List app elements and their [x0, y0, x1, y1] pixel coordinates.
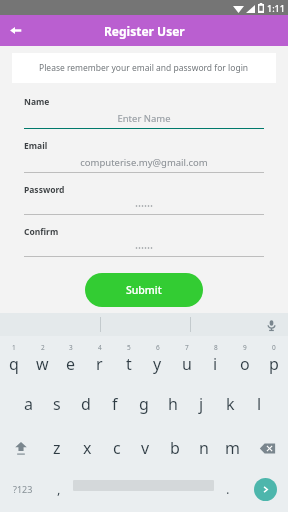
staticText: w: [36, 353, 49, 375]
staticText: g: [139, 393, 149, 415]
button[interactable]: Email: [24, 140, 264, 173]
staticText: Register User: [104, 23, 185, 39]
staticText: z: [53, 437, 61, 459]
staticText: f: [112, 393, 118, 415]
button[interactable]: 7: [172, 336, 201, 382]
button[interactable]: z: [42, 426, 72, 470]
staticText: t: [126, 353, 132, 375]
staticText: Name: [24, 96, 50, 108]
staticText: e: [66, 353, 76, 375]
button[interactable]: h: [158, 382, 187, 426]
staticText: .: [226, 480, 230, 498]
staticText: Email: [24, 140, 48, 152]
button[interactable]: Confirm: [24, 226, 264, 257]
staticText: Enter Name: [117, 112, 171, 125]
button[interactable]: 3: [56, 336, 85, 382]
button[interactable]: j: [187, 382, 216, 426]
staticText: r: [96, 353, 103, 375]
staticText: v: [141, 437, 150, 459]
staticText: 6: [156, 343, 160, 352]
staticText: b: [170, 437, 180, 459]
button[interactable]: n: [189, 426, 218, 470]
staticText: 7: [185, 343, 189, 352]
staticText: 1: [12, 343, 16, 352]
staticText: 9: [243, 343, 247, 352]
staticText: u: [182, 353, 192, 375]
staticText: 5: [127, 343, 131, 352]
staticText: Confirm: [24, 226, 59, 238]
staticText: i: [213, 353, 218, 375]
staticText: a: [24, 393, 33, 415]
staticText: ,: [57, 480, 61, 498]
staticText: 3: [69, 343, 73, 352]
staticText: 0: [272, 343, 276, 352]
staticText: computerise.my@gmail.com: [80, 156, 208, 169]
staticText: m: [225, 437, 240, 459]
button[interactable]: Name: [24, 96, 264, 129]
button[interactable]: m: [218, 426, 247, 470]
button[interactable]: k: [216, 382, 245, 426]
button[interactable]: Space: [73, 470, 214, 508]
button[interactable]: 9: [230, 336, 259, 382]
staticText: d: [81, 393, 91, 415]
button[interactable]: g: [129, 382, 158, 426]
button[interactable]: Voice input: [262, 316, 280, 334]
button[interactable]: .: [214, 470, 242, 508]
staticText: s: [53, 393, 61, 415]
button[interactable]: Backspace: [247, 426, 288, 470]
button[interactable]: 8: [201, 336, 230, 382]
button[interactable]: 4: [85, 336, 114, 382]
staticText: h: [168, 393, 178, 415]
button[interactable]: 0: [259, 336, 288, 382]
staticText: x: [83, 437, 92, 459]
button[interactable]: d: [71, 382, 100, 426]
staticText: j: [199, 393, 204, 415]
staticText: 4: [98, 343, 102, 352]
button[interactable]: Password: [24, 184, 264, 215]
button[interactable]: Shift: [0, 426, 42, 470]
button[interactable]: f: [100, 382, 129, 426]
button[interactable]: x: [72, 426, 102, 470]
button[interactable]: 2: [28, 336, 56, 382]
button[interactable]: l: [245, 382, 274, 426]
button[interactable]: c: [102, 426, 131, 470]
button[interactable]: 1: [0, 336, 28, 382]
button[interactable]: a: [14, 382, 42, 426]
button[interactable]: 5: [114, 336, 143, 382]
button[interactable]: Enter: [254, 478, 277, 501]
staticText: n: [199, 437, 209, 459]
button[interactable]: Submit: [85, 273, 203, 307]
staticText: 2: [41, 343, 45, 352]
staticText: q: [9, 353, 19, 375]
staticText: l: [257, 393, 262, 415]
staticText: Password: [24, 184, 65, 196]
staticText: y: [153, 353, 162, 375]
staticText: 8: [214, 343, 218, 352]
staticText: 1:11: [267, 2, 285, 14]
button[interactable]: s: [42, 382, 71, 426]
button[interactable]: ,: [45, 470, 73, 508]
button[interactable]: v: [131, 426, 160, 470]
button[interactable]: 6: [143, 336, 172, 382]
staticText: ?123: [13, 483, 33, 495]
staticText: Please remember your email and password …: [39, 62, 249, 74]
button[interactable]: b: [160, 426, 189, 470]
staticText: o: [240, 353, 250, 375]
button[interactable]: Back: [0, 15, 31, 46]
staticText: Submit: [126, 283, 162, 297]
staticText: c: [113, 437, 121, 459]
staticText: k: [226, 393, 235, 415]
button[interactable]: ?123: [0, 470, 45, 508]
staticText: p: [269, 353, 279, 375]
